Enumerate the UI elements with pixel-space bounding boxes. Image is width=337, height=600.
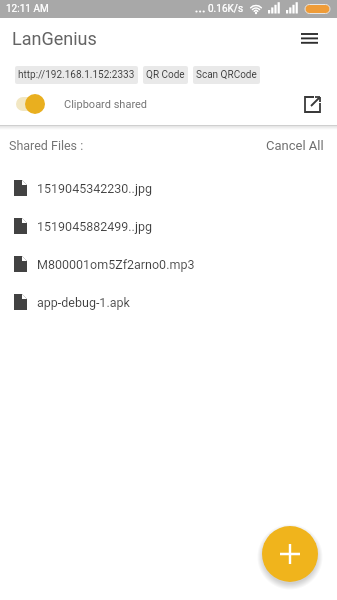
button[interactable] bbox=[302, 94, 322, 114]
staticText: 0.16K/s bbox=[208, 3, 244, 15]
staticText: Clipboard shared bbox=[64, 98, 148, 111]
staticText: QR Code bbox=[146, 69, 185, 81]
button[interactable] bbox=[297, 26, 321, 50]
staticText: 12:11 AM bbox=[6, 3, 49, 15]
staticText: app-debug-1.apk bbox=[37, 295, 130, 310]
button[interactable]: M800001om5Zf2arno0.mp3 bbox=[0, 245, 337, 283]
staticText: Shared Files : bbox=[9, 138, 84, 153]
button[interactable]: QR Code bbox=[143, 66, 188, 84]
staticText: Cancel All bbox=[266, 138, 324, 153]
button[interactable]: app-debug-1.apk bbox=[0, 283, 337, 321]
button[interactable]: http://192.168.1.152:2333 bbox=[15, 66, 138, 84]
staticText: 1519045342230..jpg bbox=[37, 181, 152, 196]
staticText: 1519045882499..jpg bbox=[37, 219, 152, 234]
button[interactable]: Cancel All bbox=[266, 138, 324, 153]
button[interactable] bbox=[262, 526, 318, 582]
button[interactable]: 1519045882499..jpg bbox=[0, 207, 337, 245]
button[interactable]: 1519045342230..jpg bbox=[0, 169, 337, 207]
staticText: LanGenius bbox=[12, 28, 97, 49]
staticText: M800001om5Zf2arno0.mp3 bbox=[37, 257, 195, 272]
staticText: http://192.168.1.152:2333 bbox=[18, 69, 135, 81]
staticText: Scan QRCode bbox=[196, 69, 257, 81]
button[interactable] bbox=[16, 94, 45, 114]
button[interactable]: Scan QRCode bbox=[193, 66, 260, 84]
